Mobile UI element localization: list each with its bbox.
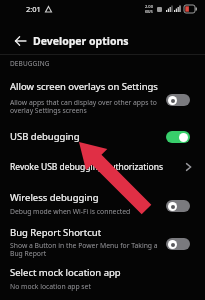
staticText: 2.00 (145, 4, 153, 9)
staticText: No mock location app set (10, 282, 91, 291)
button[interactable] (10, 31, 30, 51)
staticText: Allow apps that can display over other a… (10, 98, 157, 115)
button[interactable]: Select mock location app (0, 266, 205, 291)
button[interactable] (166, 238, 190, 250)
button[interactable]: Allow screen overlays on Settings (0, 80, 205, 115)
staticText: USB debugging (10, 130, 80, 143)
staticText: Wireless debugging (10, 191, 99, 204)
button[interactable]: USB debugging (0, 130, 205, 143)
staticText: Show a Button in the Power Menu for Taki… (10, 241, 158, 258)
staticText: Allow screen overlays on Settings (10, 80, 158, 93)
staticText: Debug mode when Wi-Fi is connected (10, 207, 131, 216)
staticText: 2:01 (26, 4, 41, 14)
button[interactable]: Revoke USB debugging authorizations (0, 161, 205, 173)
button[interactable] (166, 131, 190, 143)
staticText: Select mock location app (10, 266, 121, 279)
button[interactable]: Wireless debugging (0, 191, 205, 216)
button[interactable] (166, 94, 190, 106)
button[interactable] (166, 200, 190, 212)
staticText: Bug Report Shortcut (10, 226, 102, 239)
button[interactable]: Bug Report Shortcut (0, 226, 205, 258)
staticText: DEBUGGING (10, 59, 50, 68)
staticText: KB/S (145, 9, 153, 14)
staticText: Revoke USB debugging authorizations (10, 161, 164, 173)
staticText: Developer options (33, 34, 129, 48)
